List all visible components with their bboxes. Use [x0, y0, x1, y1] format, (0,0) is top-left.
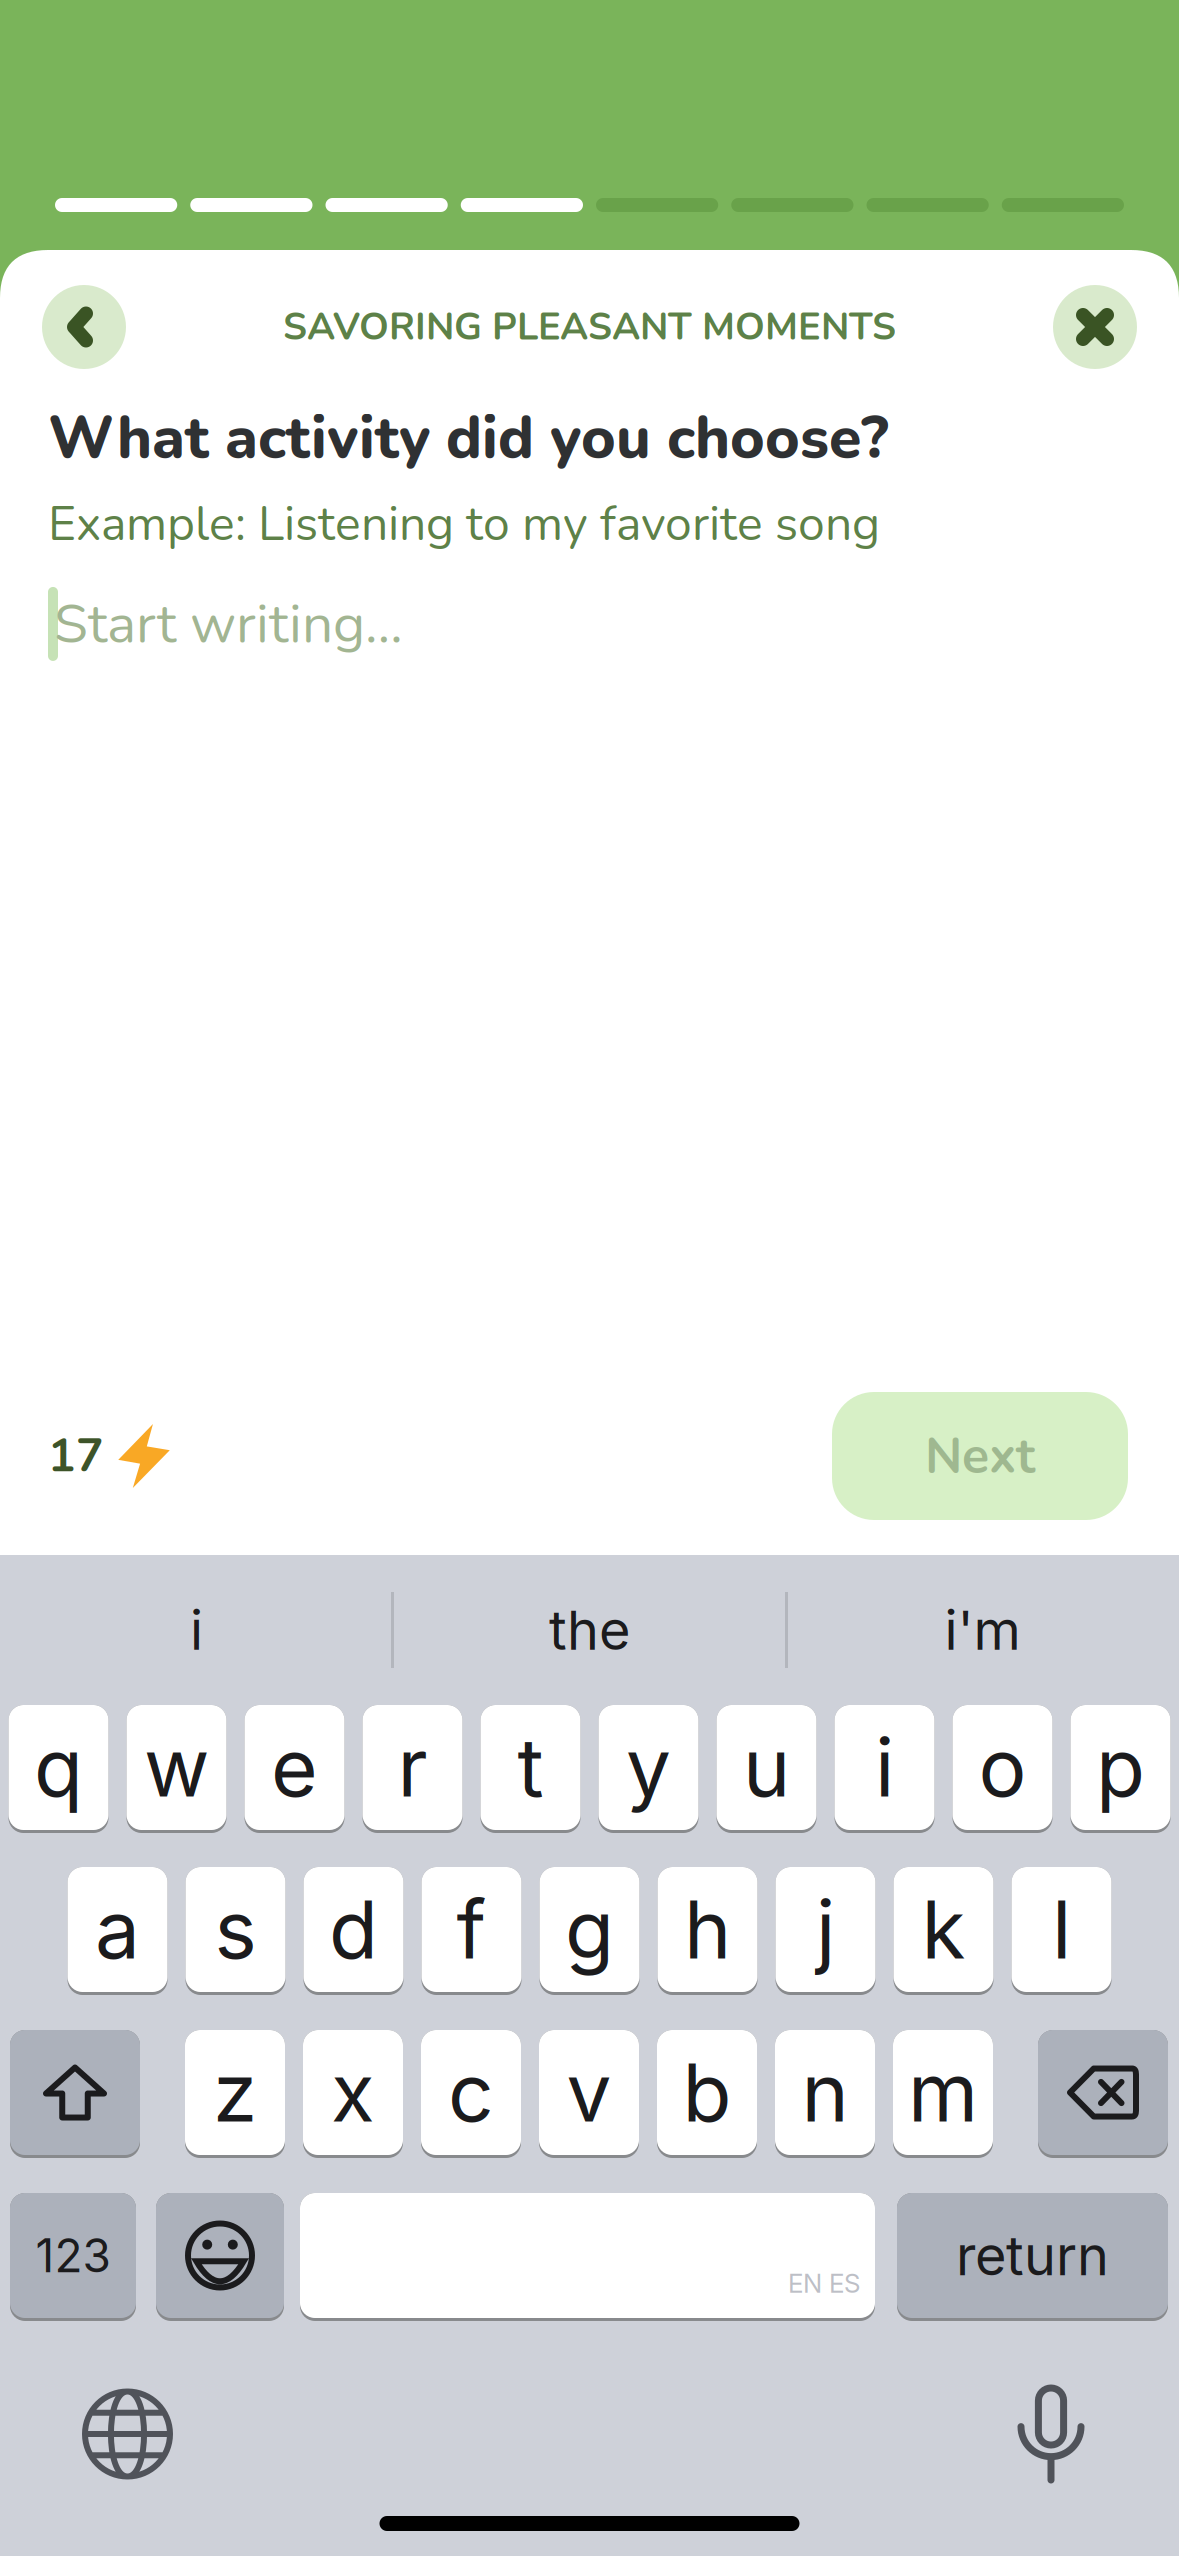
button[interactable]: i'm [786, 1597, 1179, 1663]
button[interactable]: r [362, 1705, 462, 1833]
button[interactable]: g [539, 1867, 639, 1995]
button[interactable]: u [716, 1705, 816, 1833]
staticText: What activity did you choose? [48, 398, 889, 478]
button[interactable]: i [834, 1705, 934, 1833]
button[interactable]: p [1070, 1705, 1170, 1833]
staticText: p [1096, 1719, 1145, 1816]
button[interactable]: h [657, 1867, 757, 1995]
staticText: j [816, 1881, 835, 1978]
button[interactable]: x [303, 2030, 403, 2158]
staticText: v [566, 2044, 611, 2141]
button[interactable]: Next keyboard [85, 2391, 170, 2476]
staticText: i'm [944, 1597, 1020, 1663]
button[interactable]: l [1011, 1867, 1111, 1995]
staticText: q [34, 1719, 83, 1816]
button[interactable]: Delete [1038, 2030, 1168, 2158]
button[interactable]: Space [300, 2193, 875, 2321]
button[interactable]: z [185, 2030, 285, 2158]
staticText: z [213, 2044, 257, 2141]
button[interactable]: Shift [10, 2030, 140, 2158]
button[interactable]: i [0, 1597, 393, 1663]
button[interactable]: e [244, 1705, 344, 1833]
button[interactable]: s [185, 1867, 285, 1995]
staticText: m [908, 2044, 978, 2141]
staticText: k [921, 1881, 965, 1978]
staticText: n [801, 2044, 848, 2141]
button[interactable]: Numbers [10, 2193, 136, 2321]
button[interactable]: Next [832, 1392, 1128, 1520]
staticText: y [626, 1719, 671, 1816]
staticText: l [1052, 1881, 1071, 1978]
staticText: t [517, 1719, 543, 1816]
button[interactable]: v [539, 2030, 639, 2158]
button[interactable]: t [480, 1705, 580, 1833]
staticText: return [956, 2223, 1109, 2288]
button[interactable]: y [598, 1705, 698, 1833]
staticText: i [875, 1719, 894, 1816]
button[interactable]: d [303, 1867, 403, 1995]
staticText: EN ES [788, 2267, 860, 2299]
staticText: Start writing… [54, 587, 403, 662]
button[interactable]: m [893, 2030, 993, 2158]
button[interactable]: q [8, 1705, 108, 1833]
button[interactable]: k [893, 1867, 993, 1995]
staticText: c [448, 2044, 494, 2141]
button[interactable]: n [775, 2030, 875, 2158]
button[interactable]: Back [42, 285, 126, 369]
button[interactable]: Close [1053, 285, 1137, 369]
staticText: h [684, 1881, 731, 1978]
staticText: 123 [35, 2228, 110, 2283]
staticText: x [331, 2044, 375, 2141]
staticText: a [95, 1881, 140, 1978]
button[interactable]: a [67, 1867, 167, 1995]
staticText: the [549, 1597, 630, 1663]
button[interactable]: the [393, 1597, 786, 1663]
staticText: SAVORING PLEASANT MOMENTS [283, 301, 896, 353]
button[interactable]: o [952, 1705, 1052, 1833]
staticText: g [565, 1881, 614, 1978]
button[interactable]: Return [897, 2193, 1168, 2321]
button[interactable]: c [421, 2030, 521, 2158]
staticText: Example: Listening to my favorite song [48, 491, 880, 557]
staticText: o [978, 1719, 1026, 1816]
button[interactable]: f [421, 1867, 521, 1995]
staticText: s [214, 1881, 256, 1978]
staticText: d [329, 1881, 378, 1978]
button[interactable]: b [657, 2030, 757, 2158]
staticText: w [144, 1719, 209, 1816]
staticText: r [397, 1719, 427, 1816]
staticText: i [190, 1597, 203, 1663]
staticText: 17 [48, 1425, 104, 1487]
button[interactable]: Dictation [1021, 2388, 1081, 2480]
staticText: b [682, 2044, 731, 2141]
staticText: Next [925, 1422, 1035, 1490]
staticText: f [456, 1881, 486, 1978]
staticText: u [743, 1719, 790, 1816]
button[interactable]: Emoji [156, 2193, 284, 2321]
button[interactable]: j [775, 1867, 875, 1995]
button[interactable]: w [126, 1705, 226, 1833]
staticText: e [271, 1719, 318, 1816]
